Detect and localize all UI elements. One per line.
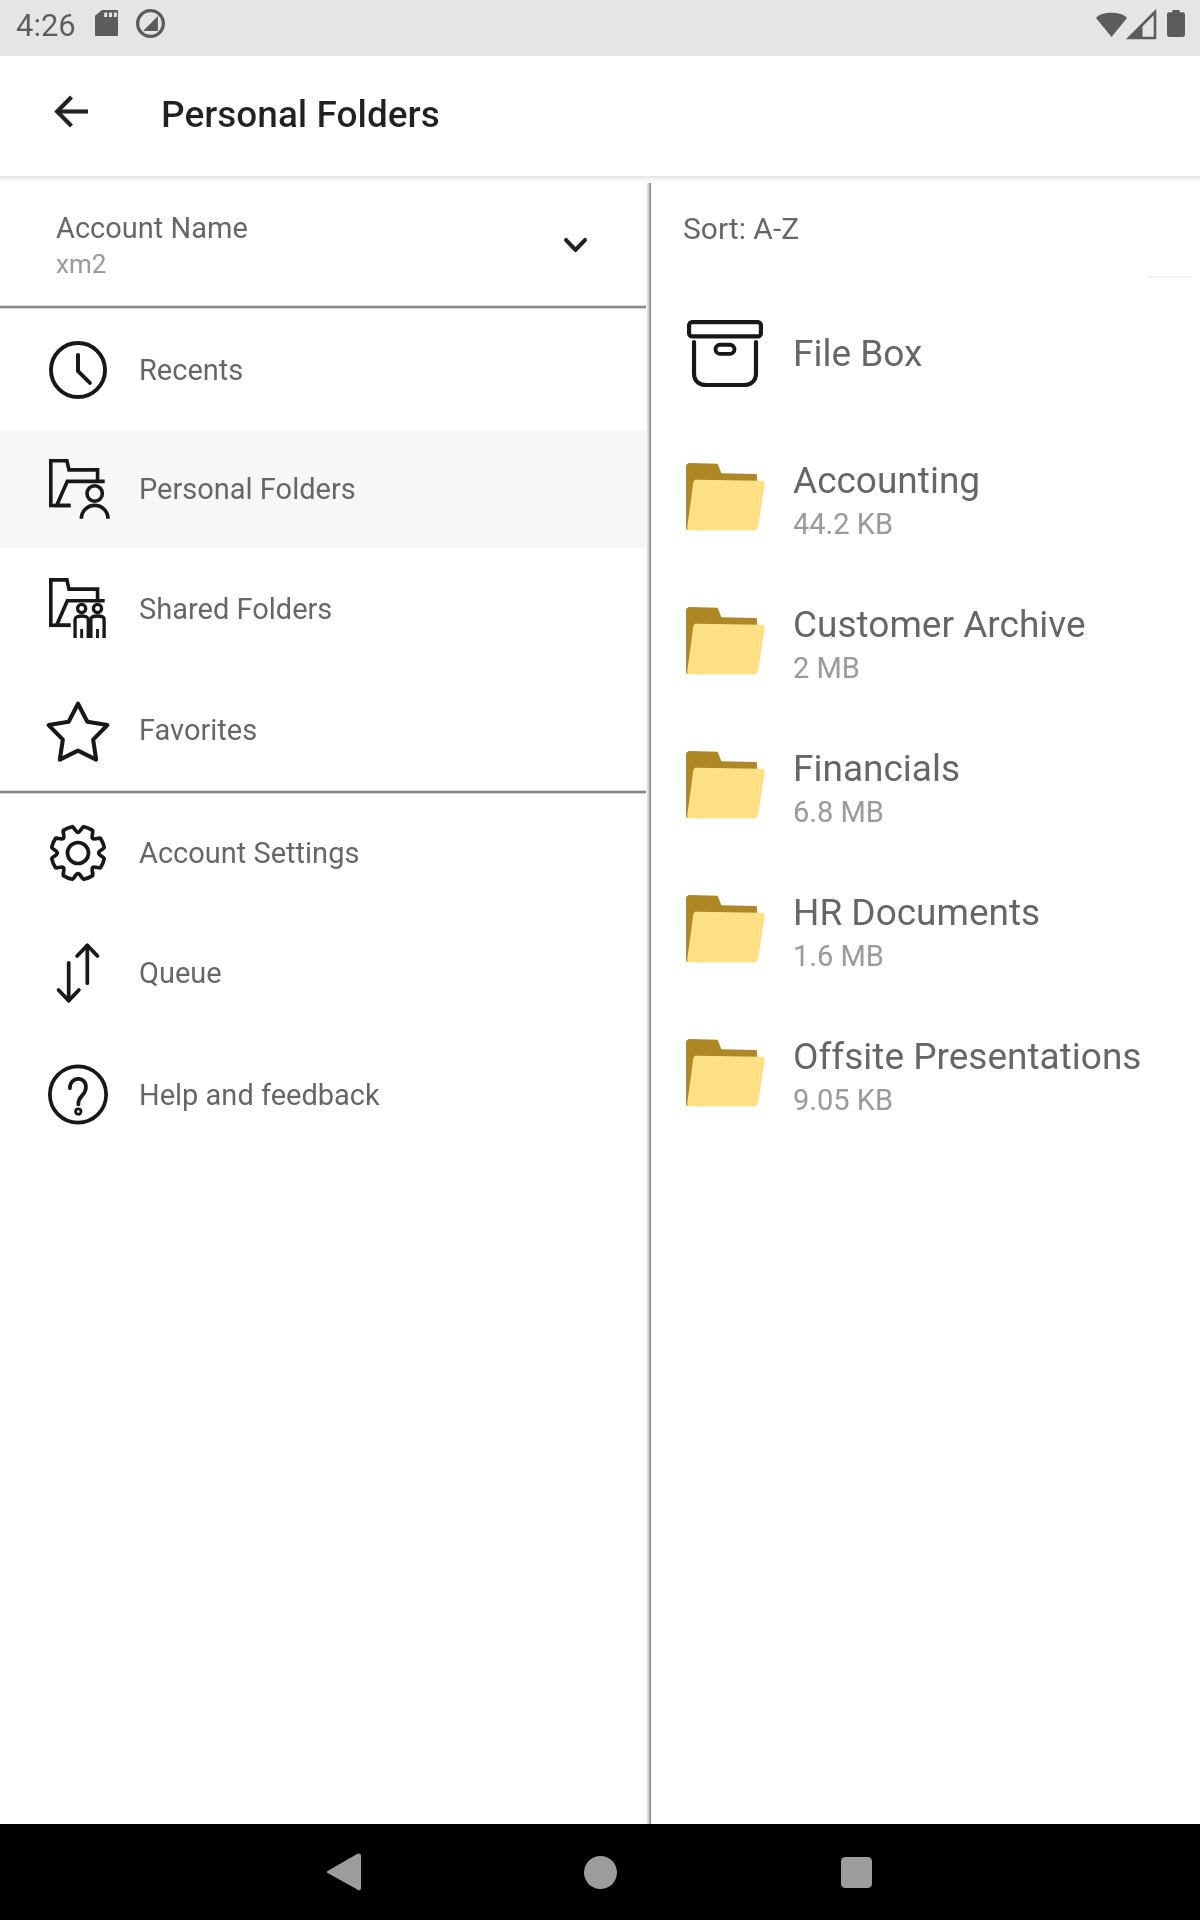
staticText: xm2 bbox=[56, 249, 107, 279]
button[interactable]: Queue bbox=[0, 912, 646, 1034]
staticText: Recents bbox=[139, 353, 244, 387]
staticText: Help and feedback bbox=[139, 1078, 380, 1112]
button[interactable]: Home bbox=[545, 1824, 655, 1920]
staticText: File Box bbox=[793, 332, 923, 375]
staticText: Account Name bbox=[56, 211, 248, 245]
button[interactable]: Recent apps bbox=[801, 1824, 911, 1920]
staticText: Queue bbox=[139, 956, 222, 990]
button[interactable]: Help and feedback bbox=[0, 1034, 646, 1155]
button[interactable]: Favorites bbox=[0, 669, 646, 790]
button[interactable]: HR Documents bbox=[652, 857, 1200, 1001]
staticText: Shared Folders bbox=[139, 592, 333, 626]
button[interactable]: Back bbox=[288, 1824, 398, 1920]
staticText: 6.8 MB bbox=[793, 795, 884, 829]
button[interactable]: Accounting bbox=[652, 425, 1200, 569]
button[interactable]: Recents bbox=[0, 309, 646, 430]
staticText: 4:26 bbox=[16, 7, 76, 43]
staticText: Favorites bbox=[139, 713, 258, 747]
staticText: Sort: A-Z bbox=[683, 211, 800, 246]
button[interactable]: Shared Folders bbox=[0, 548, 646, 669]
button[interactable]: File Box bbox=[652, 281, 1200, 425]
button[interactable]: Account Settings bbox=[0, 794, 646, 912]
button[interactable]: Offsite Presentations bbox=[652, 1001, 1200, 1145]
staticText: Account Settings bbox=[139, 836, 360, 870]
button[interactable]: Personal Folders bbox=[0, 430, 646, 548]
staticText: 44.2 KB bbox=[793, 507, 893, 541]
button[interactable]: Sort: A-Z bbox=[652, 183, 1200, 281]
staticText: Personal Folders bbox=[139, 472, 356, 506]
staticText: HR Documents bbox=[793, 891, 1041, 934]
staticText: 9.05 KB bbox=[793, 1083, 893, 1117]
staticText: Customer Archive bbox=[793, 603, 1086, 646]
staticText: Accounting bbox=[793, 459, 981, 502]
staticText: 2 MB bbox=[793, 651, 860, 685]
staticText: Offsite Presentations bbox=[793, 1035, 1142, 1078]
button[interactable]: Back bbox=[29, 69, 113, 153]
button[interactable]: Customer Archive bbox=[652, 569, 1200, 713]
button[interactable]: Financials bbox=[652, 713, 1200, 857]
staticText: Personal Folders bbox=[161, 93, 440, 136]
staticText: Financials bbox=[793, 747, 961, 790]
button[interactable]: Account Name bbox=[0, 183, 646, 305]
staticText: 1.6 MB bbox=[793, 939, 884, 973]
